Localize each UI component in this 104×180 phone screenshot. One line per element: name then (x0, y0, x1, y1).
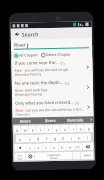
staticText: h (62, 136, 65, 141)
staticText: z (29, 145, 31, 150)
staticText: English(US) Recent (47, 153, 60, 159)
staticText: c (45, 145, 47, 150)
staticText: w (24, 127, 27, 133)
button[interactable]: Done (80, 151, 93, 159)
staticText: All Chapter (19, 52, 38, 58)
staticText: 123 Sym (17, 154, 22, 160)
button[interactable]: Delete (82, 142, 93, 150)
staticText: Select Chapter (46, 52, 71, 57)
button[interactable]: j (67, 133, 75, 142)
staticText: Dhamapa Pesong (15, 92, 42, 97)
button[interactable]: Open (85, 84, 91, 90)
button[interactable]: Riverside (62, 116, 88, 124)
button[interactable]: e (29, 125, 37, 133)
button[interactable]: v (50, 143, 58, 151)
staticText: l (87, 135, 88, 140)
staticText: f (46, 136, 48, 141)
button[interactable]: Back (13, 30, 22, 39)
staticText: e (32, 127, 35, 132)
staticText: Dhamapa Pesong (15, 72, 42, 77)
staticText: (1) (60, 61, 64, 66)
staticText: you will lose the end cough. (24, 67, 70, 72)
button[interactable]: x (34, 143, 42, 151)
staticText: with both feet. (25, 87, 49, 93)
button[interactable]: w (21, 125, 29, 134)
staticText: Done (83, 153, 91, 157)
staticText: j (71, 136, 72, 141)
staticText: s (29, 136, 31, 141)
button[interactable]: No one tests the depth... (12, 77, 93, 99)
staticText: Search (22, 30, 39, 38)
staticText: r (40, 127, 42, 132)
staticText: k (78, 135, 80, 140)
button[interactable]: s (25, 134, 34, 143)
staticText: g (54, 136, 57, 141)
button[interactable]: t (45, 125, 53, 133)
staticText: can you see the crocodile has a lamp on … (25, 106, 85, 113)
staticText: u (64, 127, 67, 132)
button[interactable]: o (77, 124, 85, 132)
staticText: (1) (75, 100, 79, 105)
staticText: Riverside (67, 117, 84, 123)
staticText: Dhamapa (15, 112, 30, 116)
button[interactable]: Rivers (13, 117, 38, 125)
button[interactable]: . (72, 151, 80, 160)
staticText: t (48, 127, 50, 132)
button[interactable]: h (59, 134, 67, 142)
staticText: p (88, 126, 91, 131)
staticText: River (14, 41, 26, 49)
button[interactable]: Open (85, 104, 91, 110)
button[interactable]: q (14, 126, 21, 134)
staticText: Rivers (20, 118, 31, 124)
staticText: i (73, 127, 74, 132)
button[interactable]: k (75, 133, 83, 142)
staticText: River (15, 88, 24, 93)
staticText: y (56, 127, 58, 132)
button[interactable]: i (69, 124, 77, 133)
staticText: d (37, 136, 40, 141)
button[interactable]: More suggestions (87, 116, 94, 123)
button[interactable]: z (26, 143, 34, 152)
staticText: o (80, 126, 83, 131)
staticText: b (61, 145, 64, 150)
button[interactable]: d (34, 134, 43, 142)
staticText: n (69, 145, 72, 150)
button[interactable]: n (66, 143, 74, 151)
staticText: . (76, 153, 77, 158)
button[interactable]: English(US) Recent (34, 152, 72, 160)
staticText: River (14, 68, 24, 73)
button[interactable]: l (83, 133, 91, 141)
button[interactable]: River (14, 40, 89, 49)
button[interactable]: c (42, 143, 50, 151)
staticText: a (19, 137, 22, 142)
button[interactable]: u (61, 125, 69, 133)
staticText: (1) (65, 81, 69, 86)
button[interactable]: a (16, 135, 25, 143)
staticText: Rivers (45, 118, 56, 123)
button[interactable]: Only what you have crossed... (12, 97, 94, 118)
button[interactable]: f (43, 134, 51, 142)
button[interactable]: Rivers (37, 117, 63, 124)
button[interactable]: p (85, 124, 93, 132)
staticText: x (37, 145, 39, 150)
button[interactable]: m (74, 142, 82, 151)
staticText: River (15, 108, 24, 113)
button[interactable]: Settings (25, 152, 34, 161)
button[interactable]: If you come near the... (11, 57, 93, 79)
button[interactable]: Select Chapter (41, 52, 71, 57)
staticText: v (53, 145, 55, 150)
button[interactable]: b (58, 143, 66, 151)
staticText: m (76, 144, 80, 149)
staticText: No one tests the depth... (15, 80, 64, 87)
staticText: If you come near the... (14, 60, 59, 67)
button[interactable]: y (53, 125, 61, 133)
button[interactable]: g (51, 134, 59, 142)
button[interactable]: r (37, 125, 45, 133)
staticText: Only what you have crossed... (15, 99, 74, 107)
button[interactable]: Shift (14, 144, 26, 152)
button[interactable]: Open (84, 64, 90, 70)
button[interactable]: All Chapter (14, 52, 38, 58)
button[interactable]: 123 Sym (14, 153, 25, 161)
staticText: q (16, 128, 19, 133)
